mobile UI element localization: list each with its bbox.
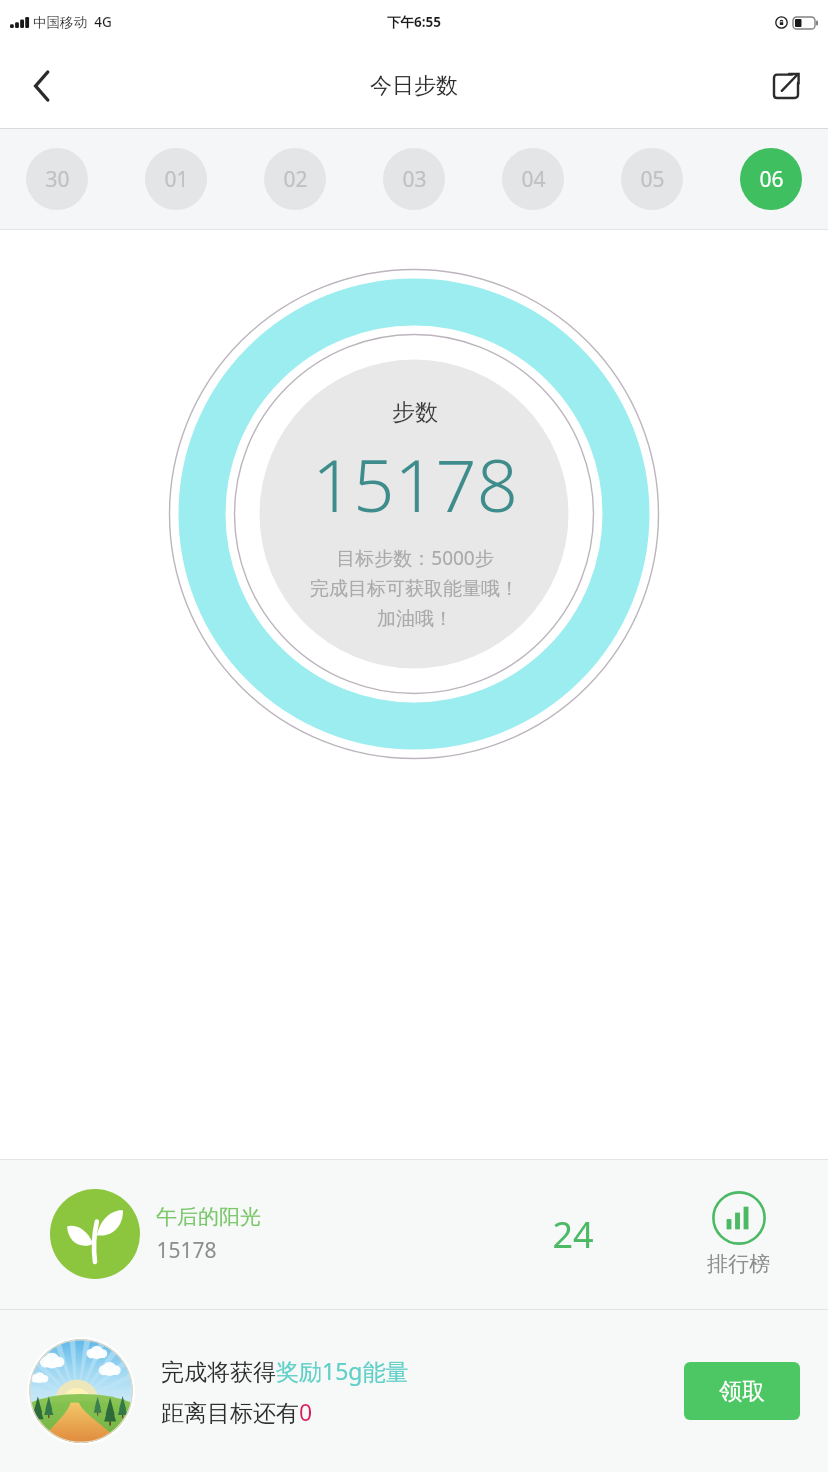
staticText: 下午6:55 <box>387 13 441 31</box>
staticText: 05 <box>640 165 665 194</box>
staticText: 15178 <box>312 435 518 533</box>
staticText: 排行榜 <box>707 1251 770 1277</box>
staticText: 01 <box>164 165 189 194</box>
button[interactable]: 06 <box>740 148 802 210</box>
staticText: 4G <box>94 13 112 31</box>
button[interactable]: 排行榜 <box>648 1159 828 1309</box>
button[interactable]: Back <box>14 58 70 114</box>
staticText: 30 <box>45 165 70 194</box>
button[interactable]: Share <box>758 58 814 114</box>
staticText: 午后的阳光 <box>156 1204 261 1230</box>
button[interactable]: 30 <box>26 148 88 210</box>
button[interactable]: 领取 <box>684 1362 800 1420</box>
staticText: 今日步数 <box>370 72 458 100</box>
button[interactable]: 05 <box>621 148 683 210</box>
staticText: 距离目标还有0 <box>161 1396 313 1427</box>
staticText: 完成将获得奖励15g能量 <box>161 1355 409 1386</box>
button[interactable]: 01 <box>145 148 207 210</box>
staticText: 加油哦！ <box>377 607 453 631</box>
staticText: 03 <box>402 165 427 194</box>
button[interactable]: 03 <box>383 148 445 210</box>
button[interactable]: 04 <box>502 148 564 210</box>
staticText: 中国移动 <box>33 14 87 31</box>
staticText: 02 <box>283 165 308 194</box>
staticText: 24 <box>552 1210 594 1259</box>
button[interactable]: 02 <box>264 148 326 210</box>
staticText: 15178 <box>156 1236 217 1265</box>
staticText: 目标步数：5000步 <box>336 545 494 571</box>
staticText: 完成目标可获取能量哦！ <box>310 577 519 601</box>
button[interactable]: 午后的阳光 <box>0 1159 498 1309</box>
staticText: 步数 <box>392 398 438 427</box>
staticText: 领取 <box>719 1377 765 1406</box>
staticText: 06 <box>759 165 784 194</box>
staticText: 04 <box>521 165 546 194</box>
